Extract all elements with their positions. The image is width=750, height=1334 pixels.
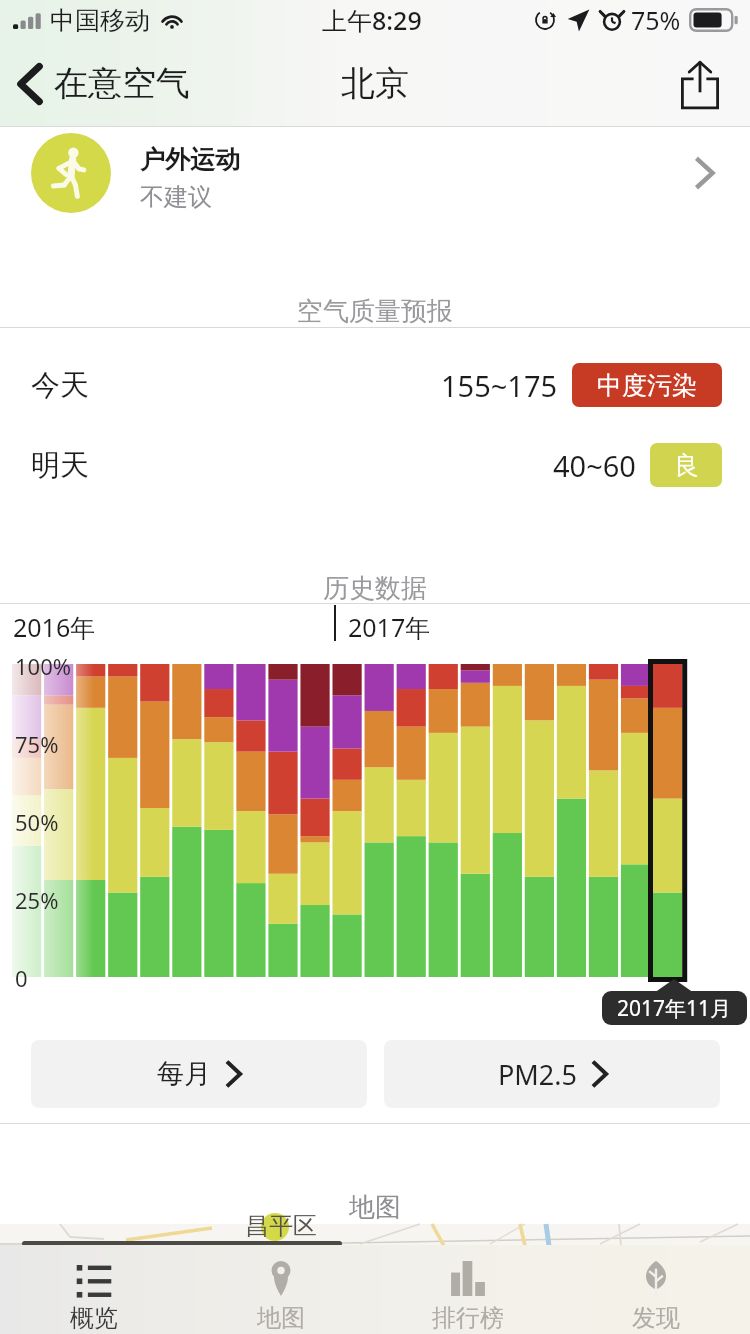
staticText: 155~175	[441, 366, 558, 405]
staticText: 地图	[257, 1303, 305, 1333]
button[interactable]: 发现	[562, 1245, 750, 1334]
button[interactable]: 地图	[187, 1245, 374, 1334]
staticText: 发现	[632, 1303, 680, 1333]
staticText: 上午8:29	[322, 3, 422, 37]
button[interactable]: 户外运动	[0, 126, 750, 220]
staticText: 50%	[15, 807, 59, 837]
button[interactable]: 明天	[0, 443, 750, 487]
staticText: 概览	[70, 1303, 118, 1333]
staticText: 不建议	[140, 182, 212, 212]
staticText: 历史数据	[323, 572, 427, 605]
button[interactable]: PM2.5	[384, 1040, 720, 1108]
staticText: 昌平区	[245, 1211, 317, 1241]
button[interactable]: 每月	[31, 1040, 367, 1108]
staticText: 中国移动	[50, 5, 150, 36]
button[interactable]: Share	[664, 50, 750, 118]
staticText: 明天	[31, 447, 89, 484]
staticText: 北京	[341, 62, 409, 105]
staticText: 40~60	[553, 446, 636, 485]
staticText: 每月	[157, 1057, 211, 1091]
staticText: 良	[674, 450, 699, 481]
staticText: PM2.5	[498, 1056, 577, 1093]
staticText: 中度污染	[597, 370, 697, 401]
staticText: 空气质量预报	[297, 295, 453, 328]
staticText: 75%	[631, 3, 681, 37]
staticText: 今天	[31, 367, 89, 404]
staticText: 排行榜	[432, 1303, 504, 1333]
staticText: 0	[15, 963, 28, 993]
button[interactable]: 排行榜	[374, 1245, 562, 1334]
staticText: 100%	[15, 651, 72, 681]
button[interactable]: Back	[0, 52, 206, 115]
button[interactable]: 概览	[0, 1245, 187, 1334]
staticText: 在意空气	[54, 62, 190, 105]
staticText: 地图	[349, 1191, 401, 1224]
staticText: 2017年	[348, 610, 431, 644]
staticText: 25%	[15, 885, 59, 915]
staticText: 75%	[15, 729, 59, 759]
button[interactable]: 今天	[0, 363, 750, 407]
staticText: 户外运动	[140, 144, 240, 175]
staticText: 2017年11月	[617, 994, 732, 1023]
staticText: 2016年	[13, 610, 96, 644]
